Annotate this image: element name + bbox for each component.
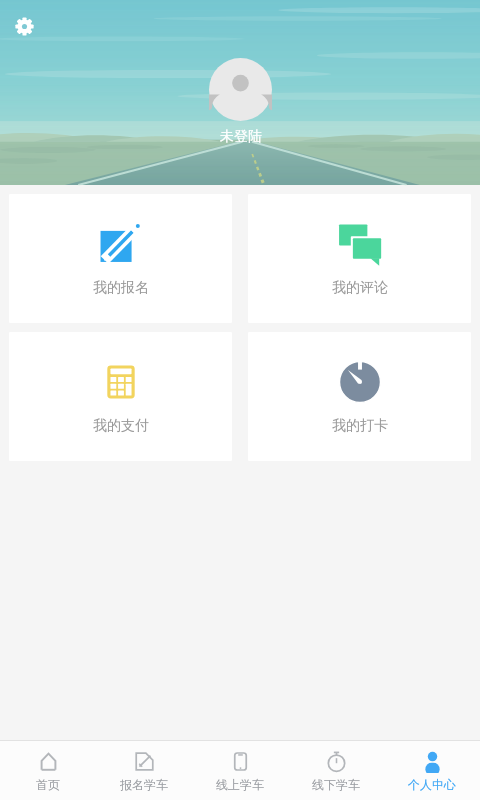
staticText: 线下学车 — [312, 777, 360, 792]
staticText: 报名学车 — [120, 777, 168, 792]
staticText: 我的报名 — [93, 279, 149, 297]
button[interactable]: 我的评论 — [248, 194, 471, 323]
button[interactable]: 我的支付 — [9, 332, 232, 461]
staticText: 我的支付 — [93, 417, 149, 435]
staticText: 我的评论 — [332, 279, 388, 297]
button[interactable]: 我的打卡 — [248, 332, 471, 461]
button[interactable]: 我的报名 — [9, 194, 232, 323]
staticText: 线上学车 — [216, 777, 264, 792]
staticText: 未登陆 — [220, 128, 262, 146]
button[interactable]: 个人中心 — [384, 741, 480, 800]
button[interactable]: 线上学车 — [192, 741, 288, 800]
button[interactable]: Settings — [8, 10, 40, 42]
staticText: 首页 — [36, 777, 60, 792]
staticText: 我的打卡 — [332, 417, 388, 435]
button[interactable]: 首页 — [0, 741, 96, 800]
staticText: 个人中心 — [408, 777, 456, 792]
button[interactable]: 线下学车 — [288, 741, 384, 800]
button[interactable]: 未登陆 — [209, 58, 272, 146]
button[interactable]: 报名学车 — [96, 741, 192, 800]
